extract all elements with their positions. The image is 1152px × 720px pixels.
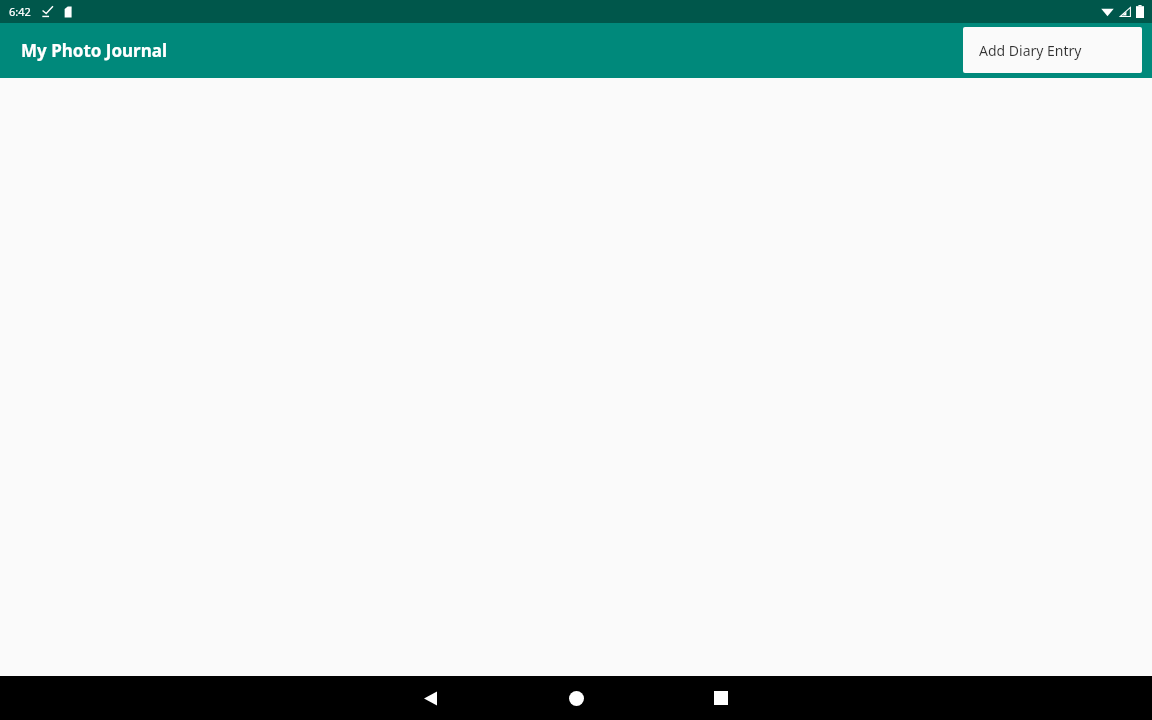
- staticText: My Photo Journal: [21, 39, 168, 62]
- button[interactable]: Home: [558, 680, 594, 716]
- button[interactable]: Back: [412, 680, 448, 716]
- staticText: Add Diary Entry: [979, 41, 1082, 60]
- button[interactable]: Recent apps: [703, 680, 739, 716]
- button[interactable]: Add Diary Entry: [963, 27, 1142, 73]
- staticText: 6:42: [9, 4, 31, 19]
